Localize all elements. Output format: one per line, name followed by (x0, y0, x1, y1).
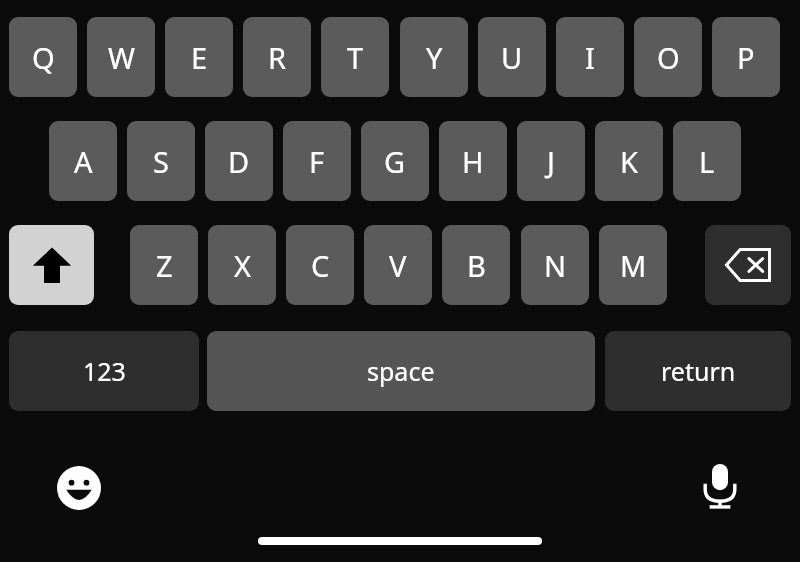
staticText: M (620, 246, 647, 285)
staticText: S (153, 142, 169, 181)
button[interactable]: Emoji keyboard (50, 459, 108, 517)
button[interactable]: U (478, 17, 546, 97)
staticText: Q (32, 38, 55, 77)
button[interactable]: W (87, 17, 155, 97)
staticText: R (268, 38, 287, 77)
staticText: U (501, 38, 523, 77)
staticText: L (699, 142, 715, 181)
button[interactable]: 123 (9, 331, 199, 411)
button[interactable]: D (205, 121, 273, 201)
button[interactable]: M (599, 225, 667, 305)
button[interactable]: V (364, 225, 432, 305)
staticText: C (311, 246, 330, 285)
button[interactable]: C (286, 225, 354, 305)
staticText: K (620, 142, 638, 181)
staticText: 123 (83, 354, 126, 388)
button[interactable]: Shift (9, 225, 94, 305)
button[interactable]: P (712, 17, 780, 97)
button[interactable]: T (321, 17, 389, 97)
button[interactable]: F (283, 121, 351, 201)
button[interactable]: space (207, 331, 595, 411)
button[interactable]: R (243, 17, 311, 97)
button[interactable]: L (673, 121, 741, 201)
button[interactable]: return (605, 331, 791, 411)
staticText: V (389, 246, 407, 285)
button[interactable]: A (49, 121, 117, 201)
staticText: O (657, 38, 680, 77)
staticText: H (462, 142, 484, 181)
staticText: B (467, 246, 486, 285)
staticText: I (585, 38, 595, 77)
staticText: G (384, 142, 406, 181)
button[interactable]: K (595, 121, 663, 201)
staticText: Z (156, 246, 173, 285)
button[interactable]: H (439, 121, 507, 201)
staticText: X (234, 246, 251, 285)
staticText: space (367, 354, 435, 388)
button[interactable]: E (165, 17, 233, 97)
button[interactable]: X (208, 225, 276, 305)
staticText: W (108, 38, 135, 77)
button[interactable]: Y (400, 17, 468, 97)
button[interactable]: Backspace (705, 225, 791, 305)
button[interactable]: B (442, 225, 510, 305)
button[interactable]: Dictation (691, 457, 749, 515)
button[interactable]: G (361, 121, 429, 201)
staticText: A (74, 142, 93, 181)
staticText: E (191, 38, 208, 77)
staticText: Y (426, 38, 443, 77)
staticText: J (547, 142, 555, 181)
button[interactable]: S (127, 121, 195, 201)
button[interactable]: Q (9, 17, 77, 97)
staticText: N (544, 246, 567, 285)
staticText: return (661, 354, 736, 388)
staticText: T (347, 38, 364, 77)
staticText: F (309, 142, 325, 181)
button[interactable]: I (556, 17, 624, 97)
staticText: D (228, 142, 250, 181)
button[interactable]: J (517, 121, 585, 201)
staticText: P (737, 38, 755, 77)
button[interactable]: O (634, 17, 702, 97)
button[interactable]: N (521, 225, 589, 305)
button[interactable]: Z (130, 225, 198, 305)
